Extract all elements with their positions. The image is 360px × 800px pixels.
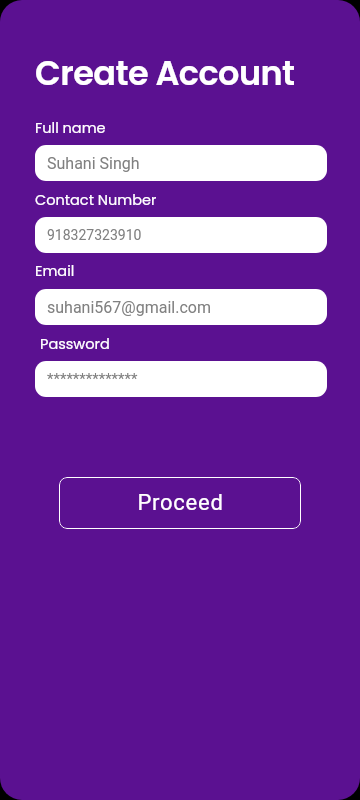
staticText: Proceed xyxy=(137,490,224,516)
staticText: suhani567@gmail.com xyxy=(47,298,211,317)
staticText: Create Account xyxy=(35,50,295,97)
staticText: Suhani Singh xyxy=(47,154,140,173)
staticText: Full name xyxy=(35,118,106,138)
button[interactable]: 918327323910 xyxy=(35,217,327,253)
staticText: ************** xyxy=(47,370,138,388)
staticText: Contact Number xyxy=(35,190,157,210)
button[interactable]: Suhani Singh xyxy=(35,145,327,181)
button[interactable]: ************** xyxy=(35,361,327,397)
button[interactable]: Proceed xyxy=(59,477,301,529)
staticText: Password xyxy=(40,334,110,354)
staticText: 918327323910 xyxy=(47,227,142,243)
staticText: Email xyxy=(35,261,75,281)
button[interactable]: suhani567@gmail.com xyxy=(35,289,327,325)
